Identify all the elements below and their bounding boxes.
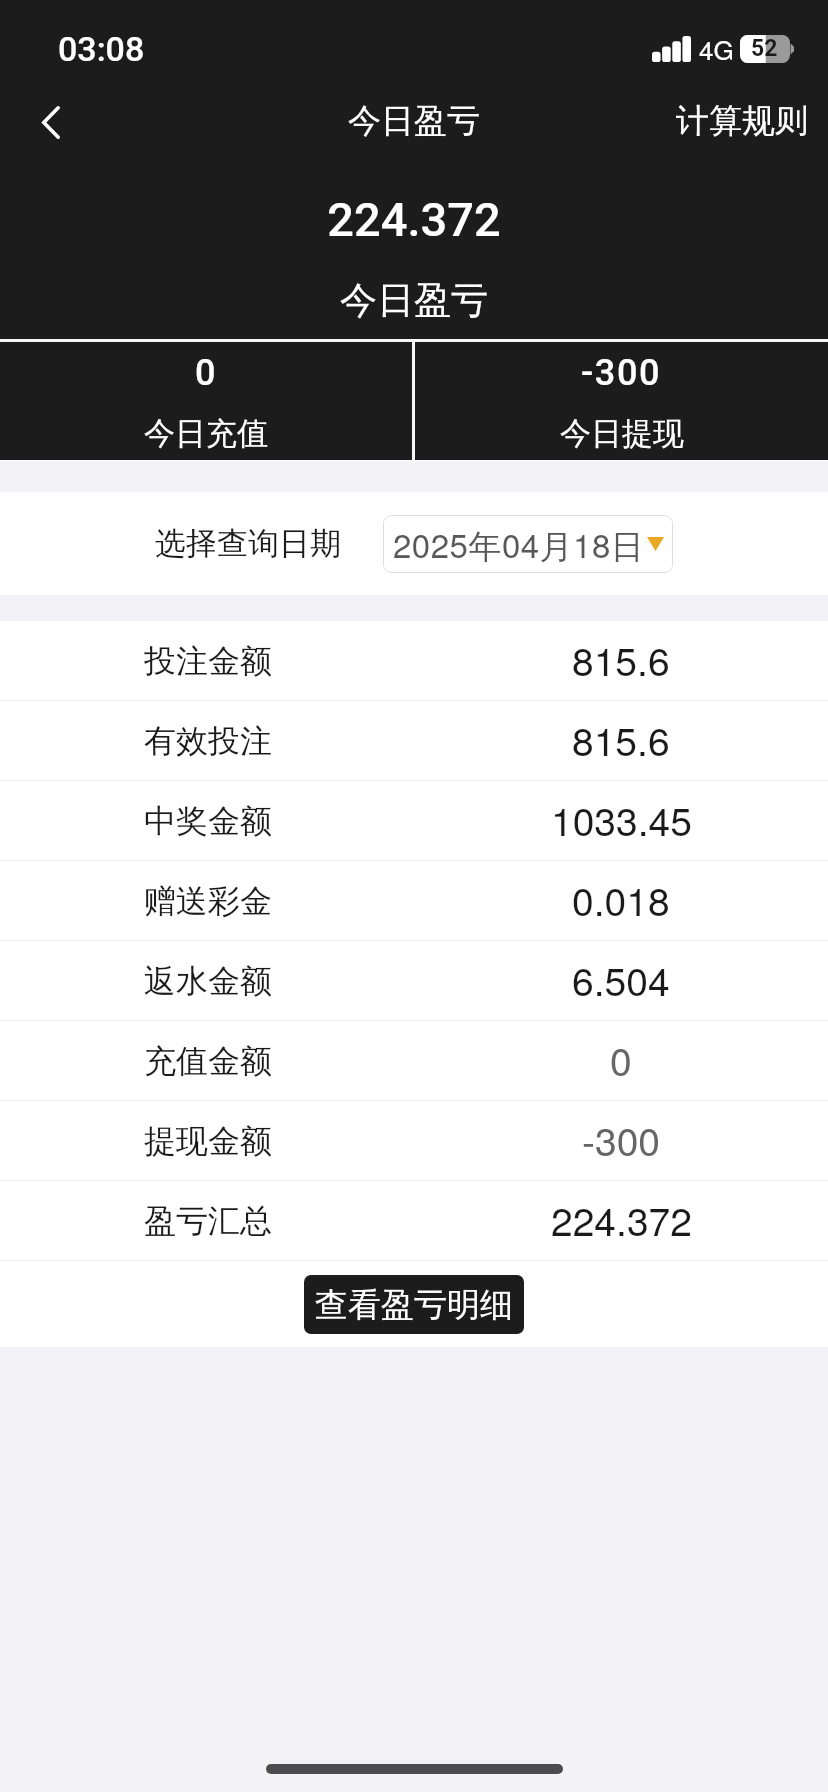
staticText: -300 bbox=[582, 1111, 661, 1167]
button[interactable]: -300 bbox=[415, 342, 828, 460]
staticText: 815.6 bbox=[572, 711, 670, 767]
staticText: 计算规则 bbox=[676, 100, 808, 142]
staticText: 赠送彩金 bbox=[144, 881, 272, 921]
staticText: 815.6 bbox=[572, 631, 670, 687]
button[interactable]: Back bbox=[0, 88, 100, 164]
button[interactable]: 投注金额 bbox=[0, 621, 828, 700]
button[interactable]: 计算规则 bbox=[653, 90, 828, 152]
staticText: 0.018 bbox=[572, 871, 670, 927]
staticText: -300 bbox=[581, 352, 662, 394]
staticText: 今日充值 bbox=[144, 414, 268, 453]
other: Signal strength bbox=[652, 36, 691, 62]
other: Battery 52 percent bbox=[740, 35, 794, 63]
button[interactable]: 赠送彩金 bbox=[0, 861, 828, 940]
button[interactable]: 提现金额 bbox=[0, 1101, 828, 1180]
staticText: 52 bbox=[751, 35, 778, 62]
staticText: 6.504 bbox=[572, 951, 670, 1007]
staticText: 返水金额 bbox=[144, 961, 272, 1001]
button[interactable]: 返水金额 bbox=[0, 941, 828, 1020]
button[interactable]: 盈亏汇总 bbox=[0, 1181, 828, 1260]
staticText: 今日盈亏 bbox=[0, 277, 828, 324]
staticText: 0 bbox=[610, 1031, 632, 1087]
staticText: 1033.45 bbox=[551, 791, 692, 847]
button[interactable]: 有效投注 bbox=[0, 701, 828, 780]
staticText: 投注金额 bbox=[144, 641, 272, 681]
staticText: 中奖金额 bbox=[144, 801, 272, 841]
staticText: 盈亏汇总 bbox=[144, 1201, 272, 1241]
staticText: 充值金额 bbox=[144, 1041, 272, 1081]
staticText: 224.372 bbox=[0, 192, 828, 247]
staticText: 今日提现 bbox=[560, 414, 684, 453]
staticText: 0 bbox=[195, 352, 218, 394]
staticText: 4G bbox=[699, 30, 734, 67]
staticText: 03:08 bbox=[58, 29, 145, 69]
staticText: 今日盈亏 bbox=[348, 100, 480, 142]
button[interactable]: 选择查询日期 2025年04月18日 bbox=[383, 515, 673, 573]
staticText: 有效投注 bbox=[144, 721, 272, 761]
button[interactable]: 0 bbox=[0, 342, 412, 460]
button[interactable]: 中奖金额 bbox=[0, 781, 828, 860]
staticText: 224.372 bbox=[551, 1191, 692, 1247]
staticText: 提现金额 bbox=[144, 1121, 272, 1161]
button[interactable]: 查看盈亏明细 bbox=[304, 1275, 524, 1334]
staticText: 选择查询日期 bbox=[155, 524, 341, 563]
staticText: 查看盈亏明细 bbox=[315, 1284, 513, 1326]
staticText: 2025年04月18日 bbox=[393, 520, 645, 568]
button[interactable]: 充值金额 bbox=[0, 1021, 828, 1100]
